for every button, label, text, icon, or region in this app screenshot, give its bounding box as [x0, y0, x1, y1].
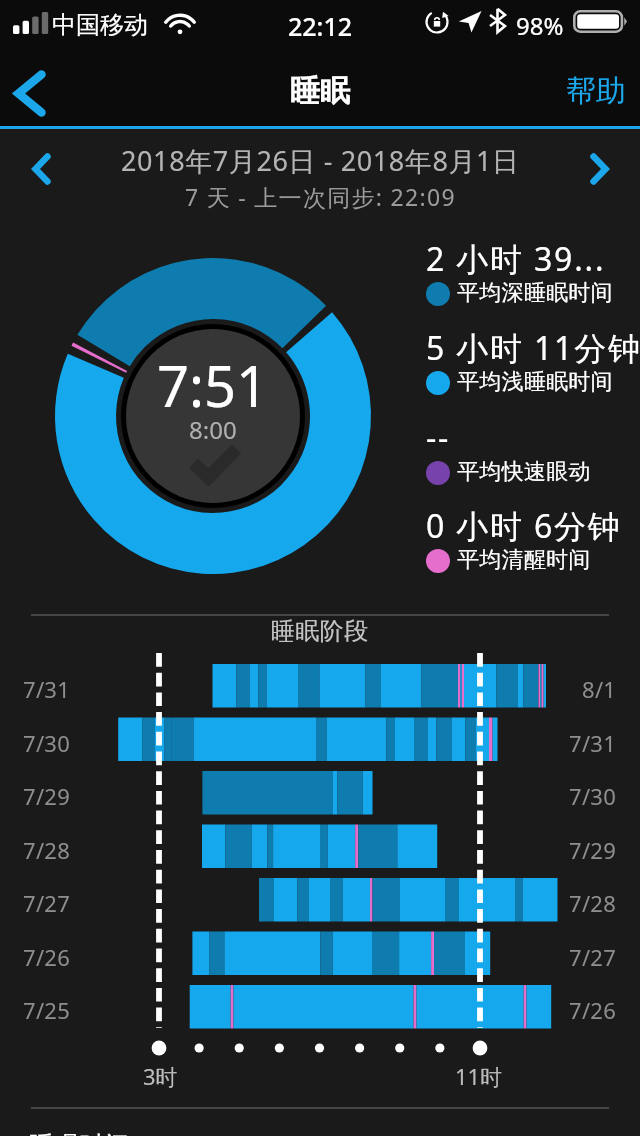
staticText: 睡眠阶段 — [271, 616, 369, 646]
staticText: 8:00 — [189, 413, 237, 446]
staticText: 7:51 — [157, 347, 269, 423]
staticText: 7/29 — [569, 835, 617, 865]
staticText: 22:12 — [288, 9, 353, 43]
staticText: 0 小时 6分钟 — [426, 504, 622, 548]
staticText: 7/27 — [569, 942, 617, 972]
staticText: 7 天 - 上一次同步: 22:09 — [185, 181, 456, 212]
staticText: 2018年7月26日 - 2018年8月1日 — [121, 142, 520, 179]
staticText: 7/31 — [569, 728, 617, 758]
staticText: 7/31 — [23, 674, 71, 704]
staticText: 7/30 — [23, 728, 71, 758]
staticText: 帮助 — [566, 72, 626, 110]
staticText: 7/26 — [569, 995, 617, 1025]
staticText: 7/26 — [23, 942, 71, 972]
staticText: 8/1 — [582, 674, 617, 704]
staticText: 平均快速眼动 — [457, 458, 591, 486]
staticText: 3时 — [143, 1061, 178, 1091]
staticText: 7/29 — [23, 781, 71, 811]
staticText: 7/27 — [23, 888, 71, 918]
button[interactable]: 帮助 — [540, 55, 640, 127]
staticText: 平均清醒时间 — [457, 546, 591, 574]
staticText: 2 小时 39... — [426, 237, 606, 281]
staticText: 睡眠 — [290, 72, 350, 110]
staticText: 平均浅睡眠时间 — [457, 368, 614, 396]
staticText: 中国移动 — [52, 10, 148, 40]
staticText: 11时 — [455, 1061, 503, 1091]
button[interactable]: 返回 — [0, 55, 66, 127]
staticText: 7/28 — [569, 888, 617, 918]
staticText: 平均深睡眠时间 — [457, 279, 614, 307]
staticText: 5 小时 11分钟 — [426, 326, 640, 370]
staticText: 98% — [516, 9, 564, 42]
button[interactable]: 下一周 — [558, 133, 640, 205]
staticText: 7/30 — [569, 781, 617, 811]
button[interactable]: 上一周 — [0, 133, 82, 205]
staticText: 睡眠时间 — [29, 1130, 129, 1136]
staticText: 7/28 — [23, 835, 71, 865]
staticText: -- — [426, 416, 451, 460]
staticText: 7/25 — [23, 995, 71, 1025]
